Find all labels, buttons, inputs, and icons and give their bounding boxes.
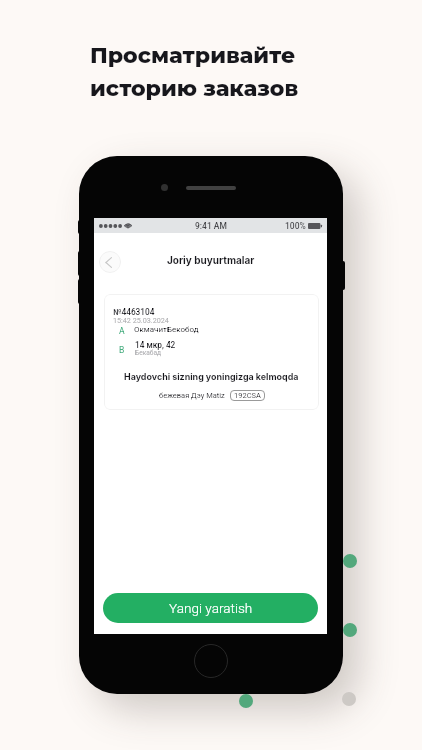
staticText: Joriy buyurtmalar [167, 254, 255, 266]
staticText: бежевая Дэу Matiz [159, 391, 225, 400]
staticText: 9:41 AM [195, 221, 227, 231]
staticText: Просматривайте [90, 42, 296, 69]
staticText: Yangi yaratish [169, 600, 253, 616]
staticText: 14 мкр, 42 [135, 340, 176, 350]
staticText: 100% [285, 221, 306, 231]
staticText: B [119, 345, 125, 355]
button[interactable]: Back [99, 251, 121, 273]
staticText: 15:42 25.03.2024 [113, 316, 169, 324]
staticText: Haydovchi sizning yoningizga kelmoqda [124, 371, 299, 382]
staticText: Бекабад [135, 349, 162, 357]
staticText: ОкмачитБекобод [134, 325, 199, 334]
button[interactable]: №4463104 [104, 294, 319, 410]
staticText: A [119, 326, 125, 336]
button[interactable]: Yangi yaratish [103, 593, 318, 623]
staticText: историю заказов [90, 75, 299, 102]
staticText: №4463104 [113, 307, 155, 317]
staticText: 192CSA [234, 391, 261, 400]
